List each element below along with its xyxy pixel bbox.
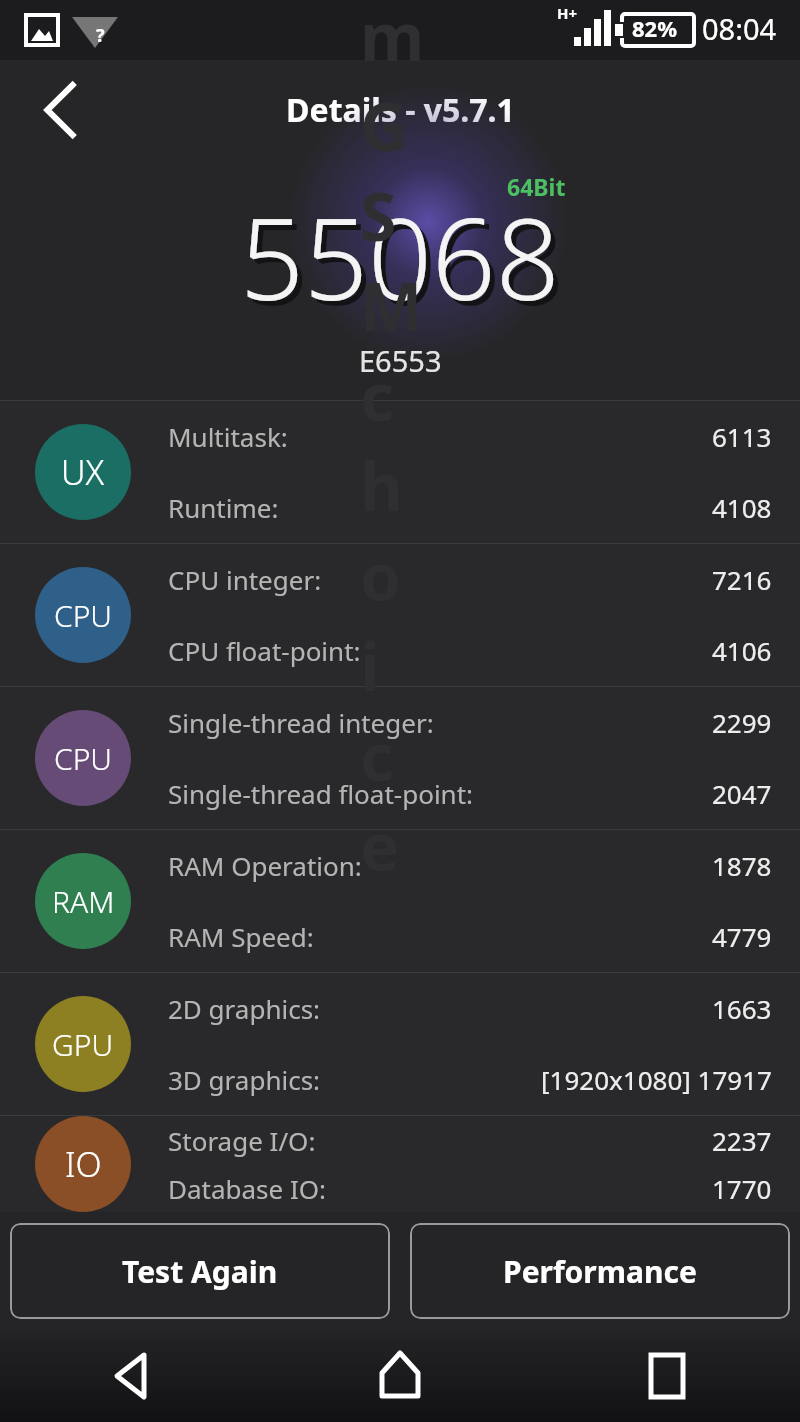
staticText: [1920x1080] 17917	[541, 1062, 772, 1097]
staticText: 3D graphics:	[168, 1062, 321, 1097]
staticText: S	[360, 170, 397, 260]
staticText: Test Again	[122, 1251, 278, 1292]
staticText: 2047	[712, 776, 772, 811]
staticText: Performance	[503, 1251, 697, 1292]
staticText: 7216	[712, 562, 772, 597]
button[interactable]: Back	[0, 60, 110, 160]
staticText: CPU integer:	[168, 562, 322, 597]
staticText: ?	[96, 23, 105, 48]
staticText: CPU	[54, 738, 112, 779]
staticText: 1663	[712, 991, 772, 1026]
staticText: E6553	[359, 341, 442, 380]
button[interactable]: GPU	[0, 973, 800, 1115]
button[interactable]: Back	[0, 1330, 266, 1422]
staticText: RAM	[52, 881, 115, 922]
staticText: CPU	[54, 595, 112, 636]
button[interactable]: RAM	[0, 830, 800, 972]
staticText: Single-thread integer:	[168, 705, 434, 740]
staticText: Database IO:	[168, 1171, 327, 1206]
staticText: RAM Operation:	[168, 848, 362, 883]
staticText: 08:04	[702, 9, 777, 48]
staticText: Multitask:	[168, 419, 288, 454]
staticText: Single-thread float-point:	[168, 776, 474, 811]
staticText: Details - v5.7.1	[286, 88, 515, 132]
staticText: m	[360, 0, 425, 80]
button[interactable]: CPU	[0, 544, 800, 686]
staticText: 4108	[712, 490, 772, 525]
staticText: 4106	[712, 633, 772, 668]
staticText: CPU float-point:	[168, 633, 361, 668]
button[interactable]: Home	[266, 1330, 533, 1422]
staticText: UX	[61, 449, 105, 495]
staticText: 2299	[712, 705, 772, 740]
staticText: 4779	[712, 919, 772, 954]
staticText: H+	[557, 3, 578, 23]
button[interactable]: UX	[0, 401, 800, 543]
staticText: 82%	[632, 13, 678, 43]
staticText: 2D graphics:	[168, 991, 321, 1026]
staticText: RAM Speed:	[168, 919, 314, 954]
staticText: 6113	[712, 419, 772, 454]
staticText: 55068	[240, 180, 560, 333]
staticText: Storage I/O:	[168, 1123, 316, 1158]
staticText: IO	[65, 1141, 102, 1187]
staticText: 2237	[712, 1123, 772, 1158]
button[interactable]: CPU	[0, 687, 800, 829]
staticText: G	[360, 80, 408, 170]
button[interactable]: Performance	[410, 1223, 790, 1319]
staticText: 1770	[712, 1171, 772, 1206]
staticText: 64Bit	[507, 171, 566, 202]
button[interactable]: IO	[0, 1116, 800, 1212]
staticText: 1878	[712, 848, 772, 883]
button[interactable]: Recents	[533, 1330, 800, 1422]
staticText: 55068	[245, 185, 565, 338]
staticText: Runtime:	[168, 490, 279, 525]
staticText: c	[360, 710, 395, 800]
staticText: M	[360, 260, 423, 350]
staticText: e	[360, 800, 400, 890]
staticText: c	[360, 350, 395, 440]
button[interactable]: Test Again	[10, 1223, 390, 1319]
staticText: GPU	[52, 1024, 114, 1065]
